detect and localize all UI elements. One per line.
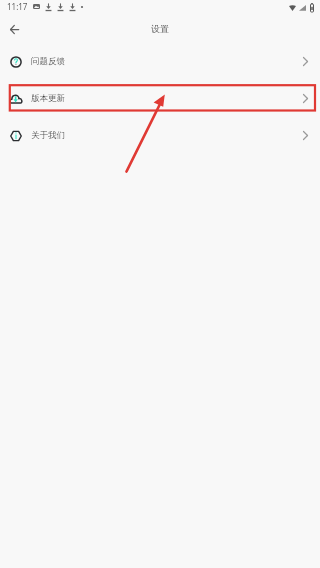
button[interactable]: Back (4, 19, 24, 39)
staticText: 设置 (151, 23, 169, 34)
button[interactable]: 版本更新 (0, 80, 320, 117)
button[interactable]: 问题反馈 (0, 43, 320, 80)
button[interactable]: 关于我们 (0, 117, 320, 154)
staticText: 问题反馈 (31, 56, 65, 67)
staticText: 11:17 (7, 1, 28, 12)
staticText: 关于我们 (31, 130, 65, 141)
staticText: 版本更新 (31, 93, 65, 104)
